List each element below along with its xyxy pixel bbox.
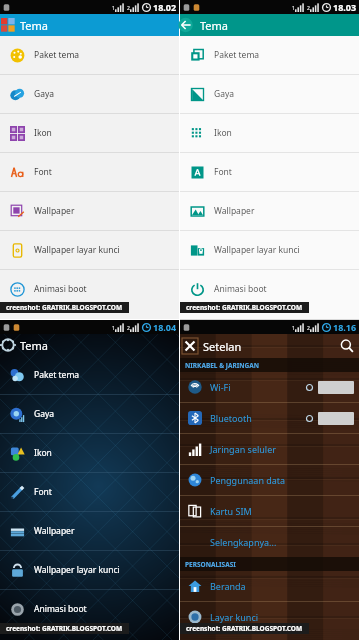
button[interactable]: Layar kunci: [180, 602, 359, 632]
staticText: creenshot: GRATRIK.BLOGSPOT.COM: [6, 303, 123, 312]
staticText: Jaringan seluler: [210, 443, 276, 455]
staticText: 18.04: [153, 321, 177, 333]
button[interactable]: Back: [180, 14, 359, 36]
staticText: creenshot: GRATRIK.BLOGSPOT.COM: [186, 303, 303, 312]
staticText: 1: [112, 325, 115, 332]
staticText: Wallpaper: [34, 525, 75, 537]
staticText: 2: [307, 325, 310, 332]
staticText: Paket tema: [214, 49, 260, 61]
staticText: Ikon: [34, 127, 52, 139]
button[interactable]: Wallpaper layar kunci: [180, 231, 359, 269]
button[interactable]: Bluetooth: [180, 403, 359, 433]
staticText: Wallpaper: [34, 205, 75, 217]
button[interactable]: Font: [0, 153, 179, 191]
button[interactable]: App icon: [0, 14, 179, 36]
staticText: 2: [127, 325, 130, 332]
staticText: 2: [127, 5, 130, 12]
staticText: Gaya: [34, 88, 55, 100]
staticText: 1: [292, 5, 295, 12]
button[interactable]: Toggle Wi-Fi: [318, 381, 354, 394]
button[interactable]: Toggle Bluetooth: [318, 412, 354, 425]
staticText: Gaya: [214, 88, 235, 100]
button[interactable]: Paket tema: [180, 36, 359, 74]
button[interactable]: Beranda: [180, 571, 359, 601]
other: Theme: [0, 337, 16, 353]
staticText: Layar kunci: [210, 611, 259, 623]
staticText: 18.03: [333, 1, 357, 13]
button[interactable]: Font: [0, 473, 179, 511]
staticText: Wallpaper layar kunci: [34, 564, 120, 576]
staticText: Beranda: [210, 580, 246, 592]
button[interactable]: Gaya: [0, 75, 179, 113]
button[interactable]: Wallpaper: [0, 512, 179, 550]
button[interactable]: Selengkapnya...: [180, 527, 359, 557]
button[interactable]: Search: [340, 339, 354, 353]
staticText: Animasi boot: [214, 283, 267, 295]
staticText: Wi-Fi: [210, 381, 231, 393]
staticText: Paket tema: [34, 369, 80, 381]
button[interactable]: Wallpaper: [180, 192, 359, 230]
staticText: creenshot: GRATRIK.BLOGSPOT.COM: [186, 624, 303, 633]
other: App icon: [0, 17, 16, 33]
button[interactable]: Gaya: [180, 75, 359, 113]
button[interactable]: Font: [180, 153, 359, 191]
button[interactable]: Wallpaper layar kunci: [0, 231, 179, 269]
button[interactable]: Jaringan seluler: [180, 434, 359, 464]
staticText: Wallpaper layar kunci: [34, 244, 120, 256]
button[interactable]: Paket tema: [0, 356, 179, 394]
staticText: Font: [34, 166, 52, 178]
staticText: Bluetooth: [210, 412, 252, 424]
button[interactable]: Animasi boot: [0, 270, 179, 308]
staticText: 18.02: [153, 1, 177, 13]
staticText: creenshot: GRATRIK.BLOGSPOT.COM: [6, 624, 123, 633]
button[interactable]: Wi-Fi: [180, 372, 359, 402]
staticText: Selengkapnya...: [210, 536, 277, 548]
staticText: Tema: [20, 338, 49, 353]
button[interactable]: Theme: [0, 334, 179, 356]
staticText: Penggunaan data: [210, 474, 286, 486]
staticText: Setelan: [203, 339, 242, 354]
staticText: Animasi boot: [34, 603, 87, 615]
staticText: Tema: [20, 18, 49, 33]
staticText: Tema: [200, 18, 229, 33]
staticText: PERSONALISASI: [185, 560, 236, 569]
button[interactable]: Gaya: [0, 395, 179, 433]
staticText: 2: [307, 5, 310, 12]
staticText: 1: [292, 325, 295, 332]
staticText: Ikon: [34, 447, 52, 459]
other: Back: [180, 14, 196, 36]
button[interactable]: Animasi boot: [0, 590, 179, 628]
button[interactable]: Animasi boot: [180, 270, 359, 308]
staticText: Font: [214, 166, 232, 178]
staticText: Paket tema: [34, 49, 80, 61]
staticText: Gaya: [34, 408, 55, 420]
button[interactable]: Ikon: [0, 434, 179, 472]
button[interactable]: Paket tema: [0, 36, 179, 74]
staticText: 1: [112, 5, 115, 12]
staticText: Font: [34, 486, 52, 498]
button[interactable]: Wallpaper: [0, 192, 179, 230]
staticText: Ikon: [214, 127, 232, 139]
staticText: Wallpaper: [214, 205, 255, 217]
button[interactable]: Kartu SIM: [180, 496, 359, 526]
staticText: Animasi boot: [34, 283, 87, 295]
button[interactable]: Settings: [180, 334, 359, 358]
button[interactable]: Penggunaan data: [180, 465, 359, 495]
other: Settings: [182, 338, 198, 354]
button[interactable]: Ikon: [180, 114, 359, 152]
staticText: Wallpaper layar kunci: [214, 244, 300, 256]
staticText: 18.16: [333, 321, 357, 333]
button[interactable]: Wallpaper layar kunci: [0, 551, 179, 589]
staticText: NIRKABEL & JARINGAN: [185, 361, 259, 370]
button[interactable]: Ikon: [0, 114, 179, 152]
staticText: Kartu SIM: [210, 505, 252, 517]
